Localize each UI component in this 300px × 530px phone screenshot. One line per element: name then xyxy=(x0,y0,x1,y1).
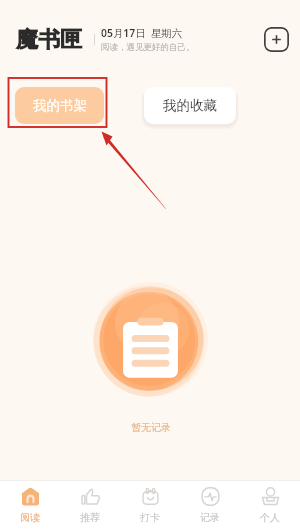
staticText: 魔书匣 xyxy=(16,26,82,54)
staticText: 我的收藏 xyxy=(163,97,217,114)
staticText: 阅读，遇见更好的自己。 xyxy=(101,42,195,53)
staticText: 阅读 xyxy=(20,511,40,524)
staticText: 推荐 xyxy=(80,511,100,524)
button[interactable]: 我的收藏 xyxy=(144,87,236,124)
button[interactable]: 我的书架 xyxy=(15,87,104,124)
staticText: 个人 xyxy=(260,511,280,524)
staticText: 暂无记录 xyxy=(131,421,171,434)
button[interactable]: 打卡 xyxy=(120,480,180,530)
staticText: 打卡 xyxy=(140,511,160,524)
staticText: 记录 xyxy=(200,511,220,524)
button[interactable]: 阅读 xyxy=(0,480,60,530)
staticText: 05月17日 星期六 xyxy=(101,26,183,40)
button[interactable]: 个人 xyxy=(240,480,300,530)
button[interactable]: Add xyxy=(264,27,289,52)
button[interactable]: 记录 xyxy=(180,480,240,530)
staticText: 我的书架 xyxy=(33,97,87,114)
button[interactable]: 推荐 xyxy=(60,480,120,530)
